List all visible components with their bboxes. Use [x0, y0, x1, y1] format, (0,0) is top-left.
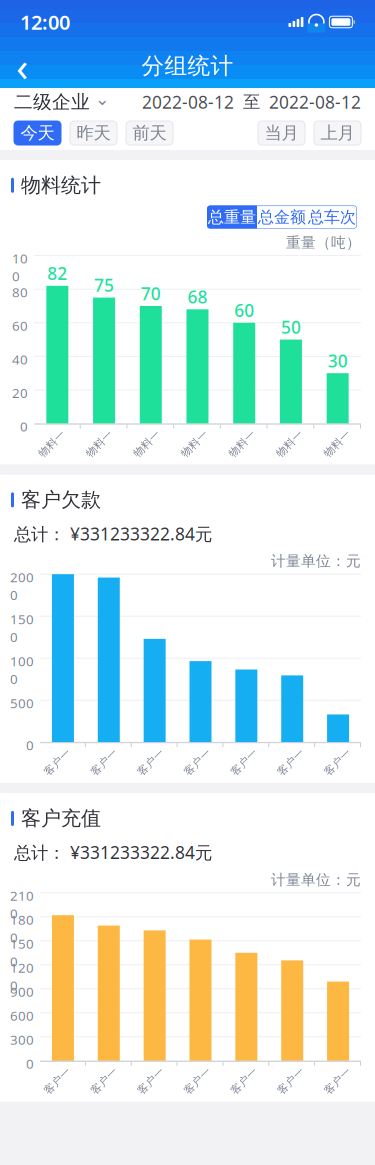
staticText: 12:00	[20, 9, 70, 35]
staticText: 68	[187, 285, 207, 308]
staticText: 500	[10, 694, 34, 712]
staticText: 客户一	[41, 756, 74, 769]
staticText: 客户一	[88, 756, 121, 769]
staticText: 70	[141, 282, 161, 305]
staticText: 60	[12, 317, 28, 334]
staticText: ⌄	[95, 89, 110, 109]
staticText: 前天	[132, 122, 166, 144]
staticText: 客户一	[228, 1074, 261, 1087]
button[interactable]: 总重量	[207, 206, 257, 229]
staticText: 客户一	[181, 1074, 214, 1087]
button[interactable]: 2022-08-12	[142, 90, 234, 113]
button[interactable]: 二级企业	[14, 90, 110, 113]
staticText: 客户一	[134, 756, 167, 769]
staticText: 2000	[10, 568, 34, 604]
staticText: 50	[281, 316, 301, 339]
staticText: 客户一	[134, 1074, 167, 1087]
staticText: 至	[243, 91, 260, 113]
staticText: 0	[26, 1055, 34, 1072]
staticText: 2100	[10, 887, 34, 922]
staticText: 重量（吨）	[286, 234, 361, 252]
staticText: 2022-08-12	[269, 90, 361, 113]
staticText: 客户一	[274, 756, 307, 769]
staticText: 客户一	[274, 1074, 307, 1087]
staticText: 900	[10, 983, 34, 1000]
staticText: 1800	[10, 911, 34, 946]
staticText: 客户一	[228, 756, 261, 769]
staticText: 物料一	[178, 437, 211, 450]
staticText: 客户一	[321, 1074, 354, 1087]
staticText: 客户一	[321, 756, 354, 769]
staticText: 物料一	[83, 437, 116, 450]
staticText: 1500	[10, 935, 34, 970]
staticText: ‹	[16, 39, 28, 92]
staticText: 1200	[10, 959, 34, 994]
staticText: 60	[234, 299, 254, 322]
staticText: 75	[94, 274, 114, 297]
staticText: 600	[10, 1007, 34, 1024]
staticText: 20	[12, 384, 28, 402]
staticText: 当月	[264, 122, 298, 144]
staticText: 二级企业	[14, 90, 90, 113]
staticText: 0	[26, 736, 34, 754]
button[interactable]: 今天	[14, 121, 61, 145]
button[interactable]: 当月	[258, 121, 305, 145]
staticText: 物料一	[35, 437, 68, 450]
button[interactable]: 昨天	[70, 121, 117, 145]
staticText: 客户一	[88, 1074, 121, 1087]
staticText: 0	[20, 418, 28, 435]
staticText: 80	[12, 283, 28, 301]
staticText: 客户充值	[21, 806, 101, 831]
button[interactable]: 上月	[314, 121, 361, 145]
staticText: 物料一	[273, 437, 306, 450]
staticText: 40	[12, 350, 28, 368]
staticText: 物料一	[321, 437, 354, 450]
staticText: 计量单位：元	[271, 552, 361, 570]
button[interactable]: 返回	[0, 44, 44, 88]
staticText: 客户欠款	[21, 488, 101, 512]
staticText: 总重量	[208, 207, 256, 227]
staticText: 客户一	[181, 756, 214, 769]
staticText: 今天	[20, 122, 54, 144]
staticText: 分组统计	[141, 52, 233, 80]
staticText: 100	[12, 250, 28, 285]
button[interactable]: 总车次	[307, 206, 357, 229]
staticText: 昨天	[76, 122, 110, 144]
staticText: 1500	[10, 610, 34, 646]
staticText: 2022-08-12	[142, 90, 234, 113]
button[interactable]: 前天	[126, 121, 173, 145]
staticText: 30	[328, 349, 348, 372]
staticText: 物料统计	[21, 173, 101, 198]
staticText: 上月	[320, 122, 354, 144]
staticText: 客户一	[41, 1074, 74, 1087]
staticText: 总计： ¥331233322.84元	[14, 841, 212, 864]
button[interactable]: 2022-08-12	[269, 90, 361, 113]
button[interactable]: 总金额	[257, 206, 307, 229]
staticText: 300	[10, 1031, 34, 1048]
staticText: 总车次	[308, 207, 356, 227]
staticText: 1000	[10, 652, 34, 688]
staticText: 总计： ¥331233322.84元	[14, 522, 212, 545]
staticText: 物料一	[130, 437, 163, 450]
staticText: 总金额	[258, 207, 306, 227]
staticText: 物料一	[226, 437, 259, 450]
staticText: 计量单位：元	[271, 871, 361, 889]
staticText: 82	[47, 262, 67, 285]
